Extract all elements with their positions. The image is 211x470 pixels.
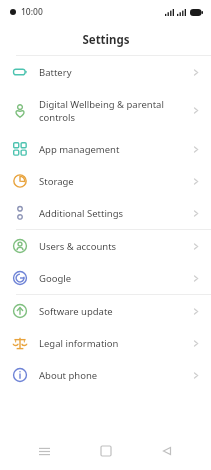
button[interactable]: Home	[88, 433, 124, 469]
staticText: Users & accounts	[39, 240, 192, 253]
button[interactable]: Users & accounts	[0, 230, 211, 262]
staticText: 10:00	[21, 6, 43, 18]
button[interactable]: App management	[0, 133, 211, 165]
staticText: About phone	[39, 369, 192, 382]
button[interactable]: Digital Wellbeing & parental controls	[0, 88, 211, 133]
button[interactable]: Legal information	[0, 327, 211, 359]
staticText: Legal information	[39, 337, 192, 350]
staticText: Additional Settings	[39, 207, 192, 220]
staticText: Settings	[82, 32, 130, 48]
staticText: Battery	[39, 66, 192, 79]
staticText: App management	[39, 143, 192, 156]
button[interactable]: Google	[0, 262, 211, 294]
staticText: Software update	[39, 305, 192, 318]
button[interactable]: Recent apps	[26, 433, 62, 469]
button[interactable]: Battery	[0, 56, 211, 88]
button[interactable]: Storage	[0, 165, 211, 197]
button[interactable]: Additional Settings	[0, 197, 211, 229]
button[interactable]: Software update	[0, 295, 211, 327]
button[interactable]: About phone	[0, 359, 211, 391]
staticText: Digital Wellbeing & parental controls	[39, 98, 192, 124]
button[interactable]: Back	[149, 433, 185, 469]
staticText: Google	[39, 272, 192, 285]
staticText: Storage	[39, 175, 192, 188]
